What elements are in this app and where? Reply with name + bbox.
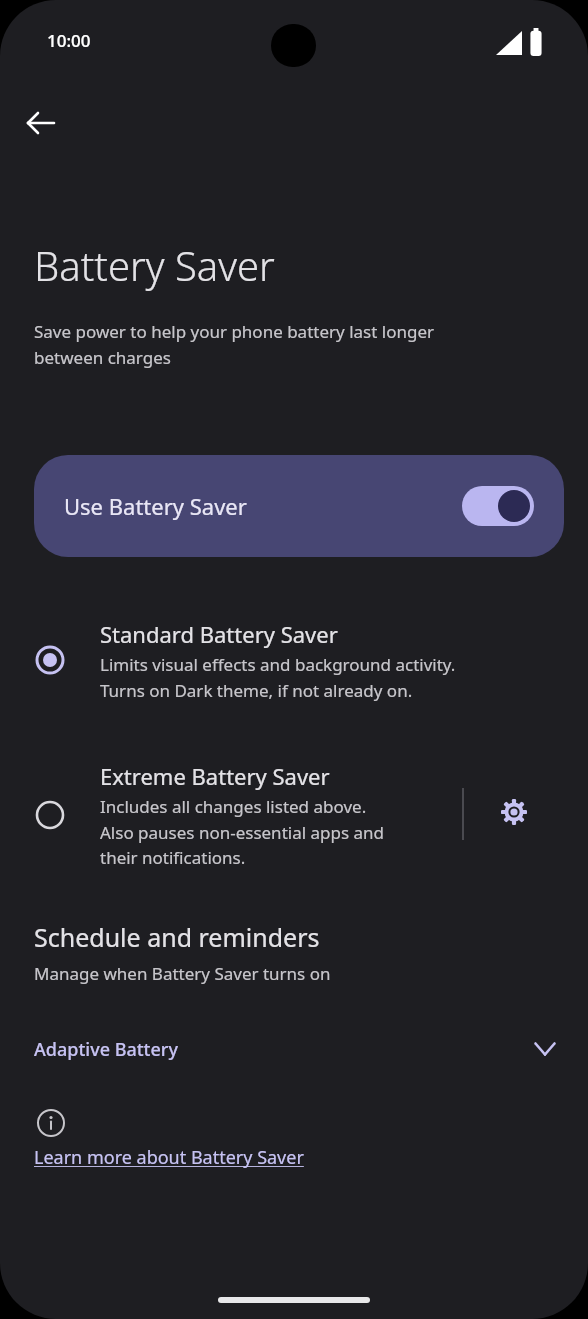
button[interactable]: Use Battery Saver	[34, 455, 564, 557]
button[interactable]: Back	[16, 98, 66, 148]
staticText: Use Battery Saver	[64, 491, 247, 521]
staticText: Learn more about Battery Saver	[34, 1145, 304, 1170]
staticText: Extreme Battery Saver	[100, 761, 330, 791]
staticText: Save power to help your phone battery la…	[34, 320, 434, 369]
button[interactable]: Learn more about Battery Saver	[34, 1143, 304, 1172]
staticText: Standard Battery Saver	[100, 619, 338, 649]
staticText: 10:00	[47, 29, 91, 52]
button[interactable]: Extreme Battery Saver settings	[487, 785, 541, 839]
staticText: Limits visual effects and background act…	[100, 653, 456, 702]
staticText: Schedule and reminders	[34, 920, 320, 954]
staticText: Includes all changes listed above. Also …	[100, 795, 385, 869]
button[interactable]: Extreme Battery Saver	[0, 742, 588, 887]
staticText: Manage when Battery Saver turns on	[34, 962, 331, 985]
staticText: Battery Saver	[34, 238, 275, 292]
button[interactable]: Standard Battery Saver	[0, 600, 588, 720]
button[interactable]: Adaptive Battery	[0, 1020, 588, 1078]
staticText: Adaptive Battery	[34, 1037, 178, 1062]
